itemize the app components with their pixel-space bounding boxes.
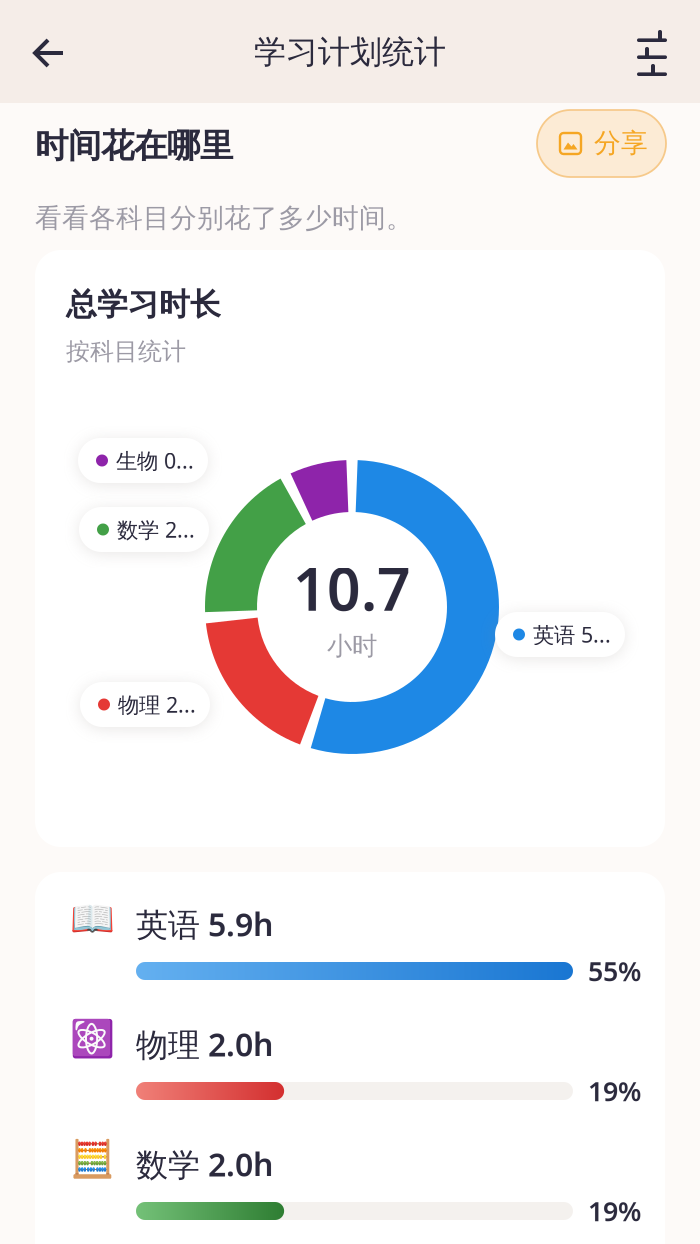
staticText: 看看各科目分别花了多少时间。 bbox=[35, 202, 413, 234]
staticText: 10.7 bbox=[293, 549, 411, 627]
staticText: 🧮 bbox=[69, 1138, 114, 1179]
staticText: 数学 2.0h bbox=[136, 1143, 273, 1185]
staticText: 按科目统计 bbox=[66, 337, 186, 366]
staticText: 物理 2... bbox=[118, 690, 196, 719]
staticText: 生物 0... bbox=[116, 446, 194, 475]
button[interactable]: Filter settings bbox=[620, 21, 684, 85]
staticText: ⚛️ bbox=[69, 1018, 114, 1059]
button[interactable]: 分享 bbox=[537, 110, 666, 177]
staticText: 19% bbox=[588, 1193, 641, 1229]
staticText: 时间花在哪里 bbox=[35, 125, 233, 166]
staticText: 小时 bbox=[327, 630, 377, 661]
staticText: 19% bbox=[588, 1073, 641, 1109]
staticText: 55% bbox=[588, 953, 641, 989]
staticText: 分享 bbox=[594, 127, 648, 159]
staticText: 学习计划统计 bbox=[254, 32, 446, 72]
staticText: 物理 2.0h bbox=[136, 1023, 273, 1065]
staticText: 英语 5.9h bbox=[136, 903, 273, 945]
staticText: 📖 bbox=[69, 898, 114, 939]
button[interactable]: Back bbox=[17, 21, 81, 85]
staticText: 总学习时长 bbox=[66, 286, 221, 323]
staticText: 英语 5... bbox=[533, 620, 611, 649]
staticText: 数学 2... bbox=[117, 515, 195, 544]
